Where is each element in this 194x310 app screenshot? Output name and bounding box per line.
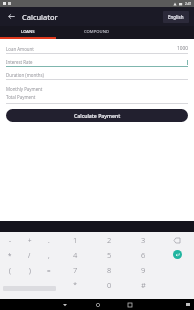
button[interactable]: 6 bbox=[126, 247, 160, 262]
button[interactable]: English bbox=[163, 11, 189, 23]
button[interactable]: # bbox=[126, 277, 160, 292]
button[interactable]: 8 bbox=[92, 262, 126, 277]
button[interactable]: Recents bbox=[125, 300, 134, 309]
staticText: Calculator bbox=[22, 12, 58, 22]
staticText: 9 bbox=[141, 265, 146, 275]
staticText: ( bbox=[9, 266, 11, 274]
button[interactable]: Duration (months) bbox=[6, 72, 188, 80]
staticText: English bbox=[168, 14, 184, 20]
button[interactable]: 4 bbox=[58, 247, 92, 262]
button[interactable]: Backspace bbox=[170, 233, 184, 247]
button[interactable]: 1 bbox=[58, 232, 92, 247]
button[interactable]: 0 bbox=[92, 277, 126, 292]
staticText: 3 bbox=[141, 235, 146, 245]
button[interactable]: = bbox=[39, 262, 58, 277]
button[interactable]: / bbox=[20, 247, 39, 262]
staticText: . bbox=[48, 236, 50, 244]
button[interactable]: Back bbox=[60, 300, 69, 309]
staticText: , bbox=[48, 251, 50, 259]
staticText: 8 bbox=[107, 265, 112, 275]
button[interactable]: + bbox=[20, 232, 39, 247]
staticText: # bbox=[141, 280, 146, 290]
button[interactable]: 5 bbox=[92, 247, 126, 262]
staticText: / bbox=[28, 251, 31, 259]
button[interactable]: 2 bbox=[92, 232, 126, 247]
staticText: LOANS bbox=[21, 29, 35, 35]
button[interactable]: Navigate up bbox=[5, 10, 18, 23]
staticText: ) bbox=[29, 266, 31, 274]
staticText: 1000 bbox=[177, 45, 188, 52]
button[interactable]: Loan Amount bbox=[6, 45, 188, 54]
staticText: 2 bbox=[107, 235, 112, 245]
staticText: Total Payment bbox=[6, 94, 36, 100]
button[interactable]: 3 bbox=[126, 232, 160, 247]
staticText: + bbox=[28, 236, 32, 244]
staticText: 2:41 bbox=[185, 2, 192, 6]
staticText: 7 bbox=[73, 265, 78, 275]
staticText: Duration (months) bbox=[6, 72, 44, 78]
staticText: * bbox=[8, 251, 12, 259]
button[interactable]: ) bbox=[20, 262, 39, 277]
button[interactable]: Hide keyboard bbox=[184, 301, 191, 308]
staticText: 0 bbox=[107, 280, 112, 290]
button[interactable]: , bbox=[39, 247, 58, 262]
staticText: 5 bbox=[107, 250, 112, 260]
staticText: * bbox=[73, 280, 78, 290]
staticText: Calculate Payment bbox=[74, 112, 121, 119]
staticText: - bbox=[9, 236, 11, 244]
button[interactable]: Enter bbox=[173, 250, 182, 259]
staticText: Loan Amount bbox=[6, 46, 34, 52]
button[interactable]: Calculate Payment bbox=[6, 109, 188, 122]
button[interactable]: * bbox=[0, 247, 20, 262]
button[interactable]: ( bbox=[0, 262, 20, 277]
staticText: = bbox=[47, 266, 51, 274]
staticText: 4 bbox=[73, 250, 78, 260]
staticText: 6 bbox=[141, 250, 146, 260]
button[interactable]: - bbox=[0, 232, 20, 247]
staticText: Interest Rate bbox=[6, 59, 33, 65]
button[interactable]: COMPOUND bbox=[56, 26, 136, 37]
staticText: COMPOUND bbox=[84, 29, 109, 35]
button[interactable]: 7 bbox=[58, 262, 92, 277]
button[interactable]: Home bbox=[93, 300, 102, 309]
button[interactable]: * bbox=[58, 277, 92, 292]
button[interactable]: 9 bbox=[126, 262, 160, 277]
staticText: 1 bbox=[73, 235, 78, 245]
button[interactable]: LOANS bbox=[0, 26, 56, 37]
button[interactable]: Interest Rate bbox=[6, 59, 188, 67]
staticText: Monthly Payment bbox=[6, 86, 43, 92]
